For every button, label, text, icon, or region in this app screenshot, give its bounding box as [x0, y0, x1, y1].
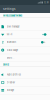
- staticText: Storage: [7, 89, 14, 92]
- button[interactable]: Display: [0, 79, 50, 87]
- button[interactable]: SIM manager: [0, 23, 50, 31]
- staticText: Bluetooth: [7, 41, 16, 44]
- staticText: WIRELESS & NETWORKS: [3, 15, 22, 17]
- button[interactable]: Audio profiles: [0, 71, 50, 79]
- button[interactable]: Data usage: [0, 46, 50, 54]
- staticText: Data usage: [7, 49, 18, 51]
- staticText: SIM manager: [7, 25, 20, 28]
- staticText: Display: [7, 81, 15, 84]
- staticText: DEVICE: [3, 64, 9, 66]
- button[interactable]: Bluetooth: [0, 39, 50, 46]
- button[interactable]: Wi-Fi: [0, 31, 50, 39]
- staticText: Settings: [3, 7, 15, 11]
- staticText: 12:30: [44, 1, 49, 4]
- staticText: Wi-Fi: [7, 33, 13, 36]
- staticText: Audio profiles: [7, 73, 21, 76]
- button[interactable]: More...: [0, 54, 50, 62]
- button[interactable]: Storage: [0, 87, 50, 94]
- staticText: More...: [7, 57, 15, 59]
